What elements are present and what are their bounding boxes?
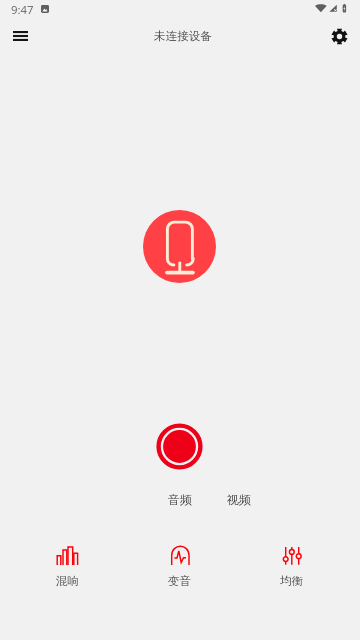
staticText: 9:47 (11, 2, 34, 18)
staticText: 均衡 (280, 574, 304, 589)
button[interactable]: 混响 (12, 543, 124, 589)
button[interactable]: 音频 (160, 490, 200, 509)
button[interactable]: 变音 (124, 543, 236, 589)
button[interactable]: 视频 (219, 490, 259, 509)
button[interactable]: Microphone (143, 210, 216, 283)
button[interactable]: Settings (323, 20, 355, 52)
button[interactable]: Menu (0, 20, 40, 52)
button[interactable]: Record (156, 423, 203, 470)
staticText: 视频 (227, 492, 251, 507)
staticText: 未连接设备 (154, 29, 212, 44)
staticText: 音频 (168, 492, 192, 507)
staticText: 变音 (168, 574, 192, 589)
button[interactable]: 均衡 (236, 543, 348, 589)
staticText: 混响 (56, 574, 80, 589)
